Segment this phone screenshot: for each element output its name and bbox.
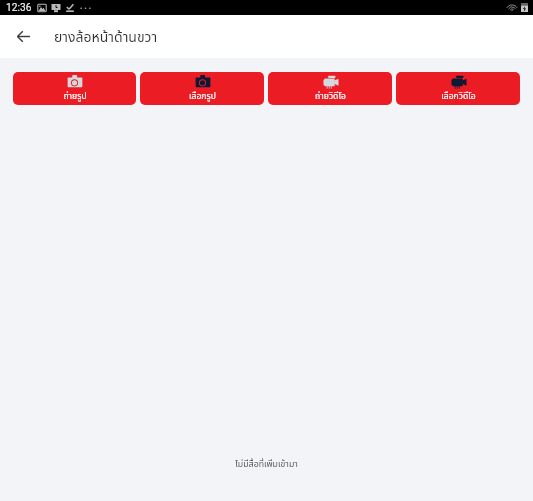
staticText: ถ่ายวิดีโอ [315, 90, 346, 103]
staticText: เลือกวิดีโอ [441, 90, 476, 103]
staticText: ยางล้อหน้าด้านขวา [54, 27, 158, 48]
button[interactable]: ถ่ายวิดีโอ [268, 72, 392, 105]
staticText: ถ่ายรูป [63, 90, 87, 103]
button[interactable]: เลือกรูป [140, 72, 264, 105]
staticText: ไม่มีสื่อที่เพิ่มเข้ามา [235, 458, 298, 471]
staticText: 12:36 [6, 2, 32, 14]
button[interactable]: เลือกวิดีโอ [396, 72, 520, 105]
button[interactable]: ถ่ายรูป [13, 72, 136, 105]
button[interactable]: Back [0, 16, 47, 58]
staticText: เลือกรูป [189, 90, 216, 103]
